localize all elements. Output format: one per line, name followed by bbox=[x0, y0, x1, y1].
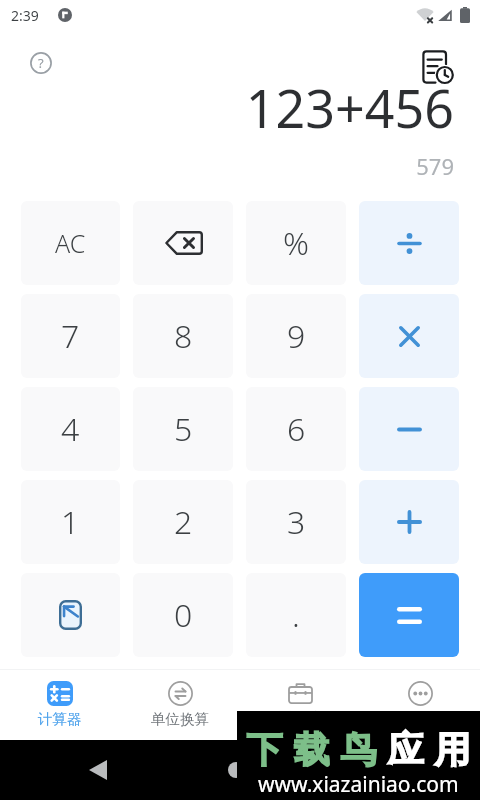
staticText: 工具箱 bbox=[278, 708, 322, 726]
staticText: www.xiazainiao.com bbox=[258, 770, 459, 799]
staticText: 单位换算 bbox=[151, 710, 209, 728]
button[interactable]: 更多 bbox=[360, 670, 480, 740]
staticText: 应用 bbox=[382, 727, 476, 772]
staticText: 下载鸟 bbox=[241, 727, 382, 772]
staticText: . bbox=[292, 593, 300, 637]
button[interactable]: Multiply bbox=[359, 294, 459, 378]
button[interactable]: Plus bbox=[359, 480, 459, 564]
staticText: 9 bbox=[287, 314, 306, 358]
button[interactable]: 工具箱 bbox=[240, 670, 360, 740]
staticText: 1 bbox=[61, 500, 80, 544]
button[interactable]: 7 bbox=[21, 294, 120, 378]
staticText: 5 bbox=[174, 407, 193, 451]
button[interactable]: Minus bbox=[359, 387, 459, 471]
button[interactable]: . bbox=[246, 573, 346, 657]
button[interactable]: % bbox=[246, 201, 346, 285]
staticText: AC bbox=[55, 226, 86, 260]
staticText: 4 bbox=[61, 407, 80, 451]
staticText: 2:39 bbox=[11, 6, 39, 25]
button[interactable]: 4 bbox=[21, 387, 120, 471]
button[interactable]: Insert bbox=[21, 573, 120, 657]
button[interactable]: 单位换算 bbox=[120, 670, 240, 740]
staticText: 3 bbox=[287, 500, 306, 544]
button[interactable]: 2 bbox=[133, 480, 233, 564]
staticText: 123+456 bbox=[245, 72, 454, 143]
staticText: 计算器 bbox=[38, 710, 82, 728]
staticText: ? bbox=[38, 54, 44, 72]
button[interactable]: 1 bbox=[21, 480, 120, 564]
button[interactable]: Help bbox=[24, 46, 58, 80]
button[interactable]: 8 bbox=[133, 294, 233, 378]
button[interactable]: 3 bbox=[246, 480, 346, 564]
button[interactable]: 计算器 bbox=[0, 670, 120, 740]
button[interactable]: 5 bbox=[133, 387, 233, 471]
button[interactable]: 0 bbox=[133, 573, 233, 657]
staticText: 更多 bbox=[406, 710, 435, 728]
staticText: 0 bbox=[174, 593, 193, 637]
staticText: 2 bbox=[174, 500, 193, 544]
button[interactable]: Backspace bbox=[133, 201, 233, 285]
button[interactable]: Home bbox=[213, 747, 259, 793]
staticText: 6 bbox=[287, 407, 306, 451]
button[interactable]: 9 bbox=[246, 294, 346, 378]
staticText: 8 bbox=[174, 314, 193, 358]
staticText: 579 bbox=[416, 151, 454, 181]
button[interactable]: Equals bbox=[359, 573, 459, 657]
button[interactable]: 6 bbox=[246, 387, 346, 471]
staticText: % bbox=[283, 221, 309, 265]
button[interactable]: History bbox=[422, 50, 453, 84]
staticText: 7 bbox=[61, 314, 80, 358]
button[interactable]: Divide bbox=[359, 201, 459, 285]
button[interactable]: Back bbox=[75, 747, 121, 793]
button[interactable]: AC bbox=[21, 201, 120, 285]
